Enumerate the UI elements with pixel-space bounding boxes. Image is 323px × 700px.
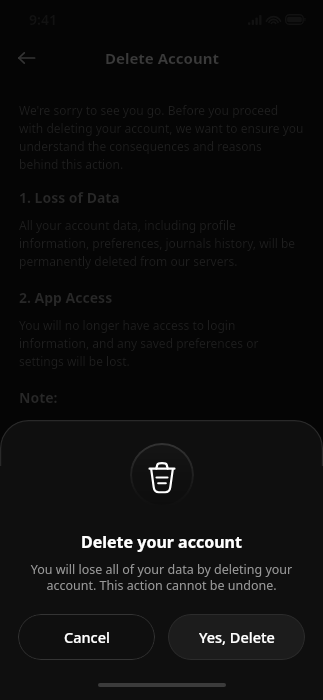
staticText: Delete Account [105, 48, 219, 68]
staticText: Delete your account [81, 531, 242, 553]
staticText: 2. App Access [19, 288, 113, 307]
staticText: Cancel [64, 627, 110, 647]
staticText: 9:41 [29, 10, 57, 29]
staticText: We're sorry to see you go. Before you pr… [19, 102, 304, 173]
staticText: Yes, Delete [199, 627, 275, 647]
staticText: Note: [19, 388, 58, 407]
staticText: You will no longer have access to login … [19, 317, 304, 370]
button[interactable]: Back [9, 41, 43, 75]
button[interactable]: Yes, Delete [168, 614, 305, 660]
staticText: You will lose all of your data by deleti… [28, 561, 295, 594]
button[interactable]: Cancel [18, 614, 155, 660]
staticText: 1. Loss of Data [19, 188, 120, 207]
staticText: All your account data, including profile… [19, 217, 304, 270]
